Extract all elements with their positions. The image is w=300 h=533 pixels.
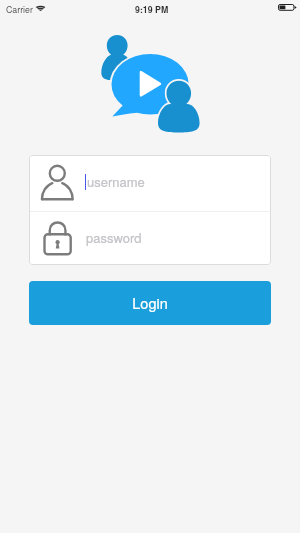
staticText: username (87, 172, 145, 191)
button[interactable]: password (29, 212, 271, 265)
staticText: 9:19 PM (135, 3, 169, 16)
staticText: Login (132, 292, 168, 313)
staticText: Carrier (6, 3, 33, 16)
button[interactable]: Login (29, 281, 271, 325)
staticText: password (86, 228, 142, 247)
button[interactable]: username (29, 155, 271, 211)
